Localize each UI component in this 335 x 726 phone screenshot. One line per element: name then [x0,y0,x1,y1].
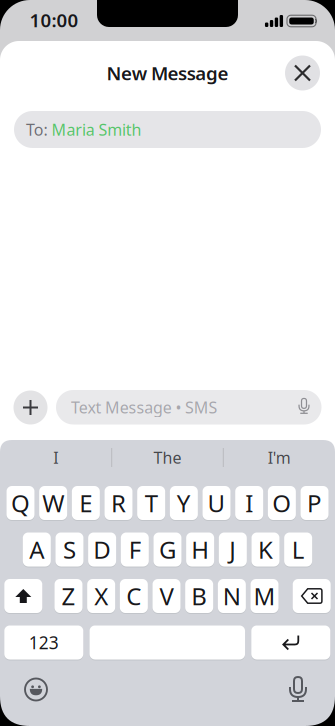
button[interactable]: To: [14,111,321,148]
button[interactable]: Dictate message [292,394,316,418]
staticText: 123 [29,631,59,654]
button[interactable]: Add attachment [13,390,47,424]
button[interactable]: K [251,532,279,566]
button[interactable]: P [300,486,328,520]
button[interactable]: H [186,532,214,566]
staticText: F [129,534,141,565]
staticText: T [145,487,158,519]
button[interactable]: L [284,532,312,566]
button[interactable]: S [55,532,83,566]
staticText: B [191,580,207,612]
staticText: J [229,534,236,565]
button[interactable]: W [39,486,67,520]
button[interactable]: Close [285,55,320,90]
staticText: C [126,580,141,612]
button[interactable]: I [6,444,106,470]
staticText: X [94,580,108,612]
staticText: Text Message • SMS [71,397,218,418]
staticText: D [93,534,111,565]
button[interactable]: D [88,532,116,566]
staticText: E [79,487,92,519]
staticText: 10:00 [29,8,78,32]
staticText: G [159,534,176,565]
staticText: W [42,487,64,519]
button[interactable]: B [185,579,213,613]
staticText: Y [177,487,191,519]
button[interactable]: G [153,532,181,566]
staticText: Maria Smith [52,119,142,140]
button[interactable]: N [218,579,246,613]
button[interactable]: F [121,532,149,566]
button[interactable]: R [104,486,132,520]
button[interactable]: Emoji [24,677,48,701]
staticText: P [307,487,322,519]
button[interactable]: M [250,579,278,613]
staticText: U [207,487,225,519]
staticText: A [29,534,44,565]
button[interactable]: U [202,486,230,520]
button[interactable]: Z [54,579,82,613]
staticText: S [63,534,76,565]
button[interactable]: I [235,486,263,520]
button[interactable]: C [120,579,148,613]
button[interactable]: Return [251,625,330,659]
staticText: L [292,534,305,565]
staticText: K [258,534,273,565]
button[interactable]: The [117,444,217,470]
staticText: Z [61,580,75,612]
button[interactable]: J [219,532,247,566]
button[interactable]: Shift [4,579,42,613]
button[interactable]: Space [90,625,245,659]
staticText: To: [26,119,48,140]
staticText: H [191,534,209,565]
button[interactable]: Delete [293,579,331,613]
button[interactable]: Dictation [285,677,311,703]
button[interactable]: 123 [4,625,83,659]
button[interactable]: Text Message SMS field [56,390,321,424]
staticText: The [153,447,181,468]
staticText: Q [11,487,30,519]
button[interactable]: V [152,579,180,613]
staticText: N [223,580,241,612]
button[interactable]: X [87,579,115,613]
button[interactable]: I'm [229,444,329,470]
staticText: O [272,487,291,519]
button[interactable]: T [137,486,165,520]
button[interactable]: Q [6,486,34,520]
staticText: New Message [106,61,228,85]
staticText: I [245,487,253,519]
button[interactable]: Y [170,486,198,520]
staticText: R [111,487,126,519]
staticText: M [253,580,275,612]
staticText: I [53,447,58,468]
button[interactable]: O [268,486,296,520]
staticText: I'm [268,447,291,468]
button[interactable]: E [72,486,100,520]
button[interactable]: A [23,532,51,566]
staticText: V [159,580,173,612]
